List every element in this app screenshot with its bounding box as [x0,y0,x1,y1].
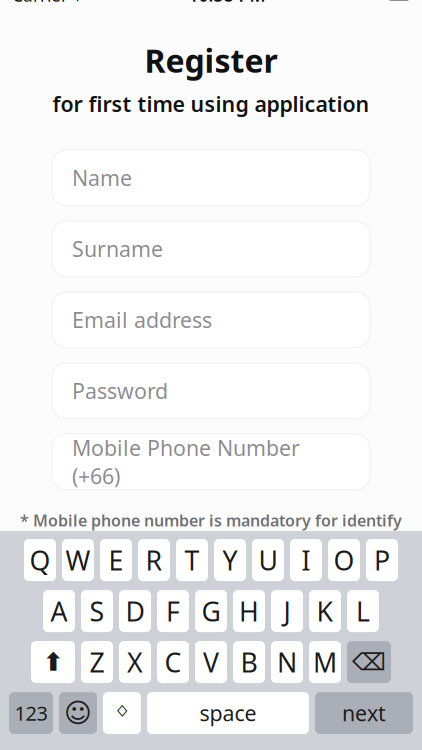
staticText: space [199,699,256,727]
button[interactable]: C [157,641,189,683]
button[interactable]: N [271,641,303,683]
staticText: ▼ [72,0,83,3]
button[interactable]: Dictate [103,692,141,734]
button[interactable]: R [138,539,170,581]
button[interactable]: A [43,590,75,632]
button[interactable]: X [119,641,151,683]
staticText: 123 [14,700,47,726]
button[interactable]: Numbers [9,692,53,734]
button[interactable]: Q [24,539,56,581]
staticText: T [184,542,199,578]
button[interactable]: next [315,692,413,734]
staticText: for first time using application [52,89,369,118]
button[interactable]: Shift [31,641,75,683]
staticText: D [125,593,144,629]
staticText: ☺ [64,698,92,728]
staticText: W [65,542,90,578]
staticText: U [258,542,277,578]
button[interactable]: Surname [52,221,370,277]
staticText: R [145,542,162,578]
button[interactable]: T [176,539,208,581]
staticText: A [50,593,67,629]
staticText: Y [222,542,237,578]
staticText: Password [72,377,168,405]
button[interactable]: Name [52,150,370,206]
staticText: O [333,542,354,578]
staticText: I [301,542,310,578]
button[interactable]: V [195,641,227,683]
button[interactable]: G [195,590,227,632]
button[interactable]: J [271,590,303,632]
staticText: X [127,644,143,680]
button[interactable]: P [366,539,398,581]
button[interactable]: Y [214,539,246,581]
staticText: Surname [72,235,163,263]
staticText: Carrier [12,0,68,6]
staticText: F [166,593,180,629]
staticText: next [342,699,386,727]
button[interactable]: Mobile Phone Number (+66) [52,434,370,490]
staticText: E [108,542,123,578]
button[interactable]: B [233,641,265,683]
staticText: Name [72,164,132,192]
staticText: Z [89,644,104,680]
button[interactable]: Password [52,363,370,419]
button[interactable]: S [81,590,113,632]
staticText: C [164,644,181,680]
staticText: Register [144,39,277,81]
staticText: V [203,644,219,680]
button[interactable]: O [328,539,360,581]
button[interactable]: Email address [52,292,370,348]
button[interactable]: L [347,590,379,632]
staticText: 10:58 PM [188,0,265,6]
button[interactable]: W [62,539,94,581]
staticText: J [283,593,290,629]
staticText: G [201,593,220,629]
staticText: P [374,542,390,578]
staticText: S [89,593,104,629]
button[interactable]: Delete [347,641,391,683]
button[interactable]: Z [81,641,113,683]
staticText: Mobile Phone Number (+66) [72,433,300,490]
button[interactable]: F [157,590,189,632]
button[interactable]: M [309,641,341,683]
button[interactable]: H [233,590,265,632]
button[interactable]: I [290,539,322,581]
staticText: B [240,644,257,680]
button[interactable]: space [147,692,309,734]
button[interactable]: K [309,590,341,632]
staticText: L [356,593,370,629]
staticText: * Mobile phone number is mandatory for i… [20,510,402,531]
staticText: ⬆ [42,648,63,676]
staticText: Q [29,542,50,578]
staticText: ᛜ [115,701,129,725]
button[interactable]: Emoji [59,692,97,734]
staticText: K [316,593,333,629]
staticText: H [239,593,259,629]
staticText: N [277,644,297,680]
button[interactable]: U [252,539,284,581]
staticText: M [313,644,337,680]
staticText: Email address [72,306,212,334]
button[interactable]: D [119,590,151,632]
staticText: ⌫ [352,648,386,676]
button[interactable]: E [100,539,132,581]
